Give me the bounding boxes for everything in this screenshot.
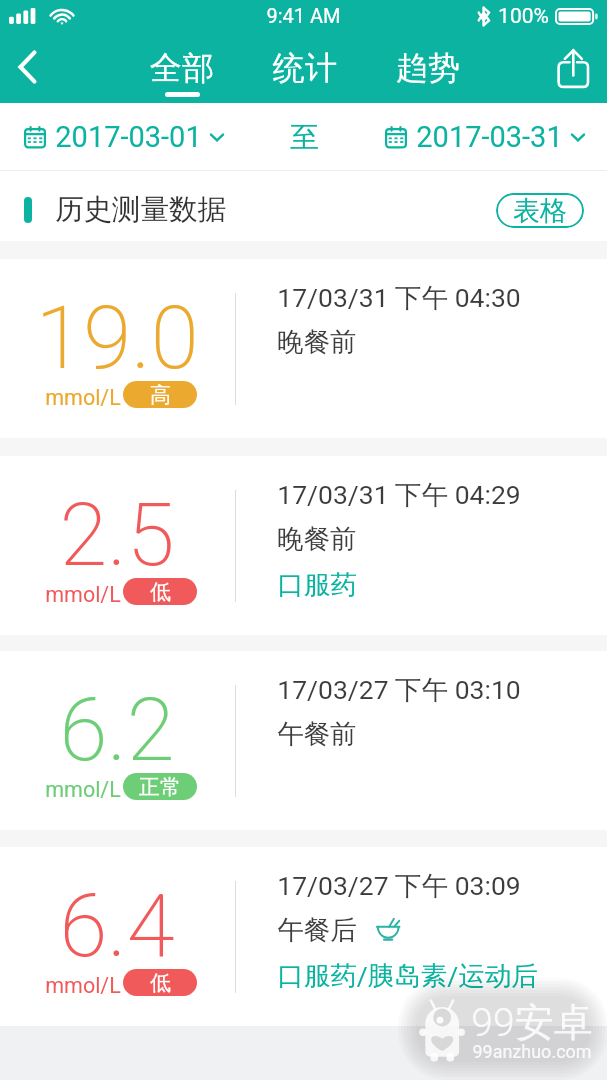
staticText: 统计 [273, 48, 337, 88]
staticText: 17/03/27 下午 03:10 [277, 673, 521, 706]
staticText: 17/03/31 下午 04:30 [277, 281, 521, 314]
staticText: 午餐后 [277, 913, 357, 946]
staticText: 17/03/31 下午 04:29 [277, 478, 521, 511]
staticText: 全部 [150, 48, 214, 88]
staticText: 口服药 [277, 568, 357, 601]
button[interactable]: 统计 [271, 36, 339, 97]
staticText: 6.2 [59, 679, 175, 781]
staticText: 口服药/胰岛素/运动后 [277, 959, 538, 992]
staticText: 19.0 [35, 287, 199, 389]
staticText: 2017-03-31 [416, 120, 563, 154]
staticText: 低 [150, 970, 171, 996]
staticText: 午餐前 [277, 717, 357, 750]
staticText: mmol/L [45, 582, 121, 607]
staticText: 历史测量数据 [55, 192, 226, 228]
staticText: mmol/L [45, 777, 121, 802]
staticText: 晚餐前 [277, 325, 357, 358]
button[interactable]: 全部 [148, 36, 216, 97]
staticText: 17/03/27 下午 03:09 [277, 869, 521, 902]
button[interactable]: 6.2 [0, 651, 607, 830]
button[interactable]: 表格 [496, 193, 584, 228]
staticText: 2017-03-01 [55, 120, 202, 154]
staticText: 99anzhuo.com [472, 1041, 592, 1062]
button[interactable]: Share [545, 36, 607, 103]
staticText: 9:41 AM [266, 4, 341, 27]
button[interactable]: Back [0, 36, 58, 103]
staticText: 正常 [139, 774, 181, 800]
staticText: mmol/L [45, 973, 121, 998]
button[interactable]: 2017-03-01 [24, 120, 224, 154]
staticText: 100% [498, 4, 549, 29]
staticText: 表格 [513, 194, 567, 228]
button[interactable]: 19.0 [0, 259, 607, 438]
staticText: 6.4 [59, 875, 175, 977]
staticText: mmol/L [45, 385, 121, 410]
button[interactable]: 趋势 [394, 36, 462, 97]
staticText: 趋势 [396, 48, 460, 88]
staticText: 低 [150, 579, 171, 605]
staticText: 高 [150, 382, 171, 408]
staticText: 至 [290, 119, 319, 156]
button[interactable]: 2.5 [0, 456, 607, 635]
button[interactable]: 2017-03-31 [385, 120, 585, 154]
staticText: 晚餐前 [277, 522, 357, 555]
staticText: 99安卓 [471, 998, 593, 1047]
staticText: 2.5 [59, 484, 175, 586]
button[interactable]: 6.4 [0, 847, 607, 1026]
